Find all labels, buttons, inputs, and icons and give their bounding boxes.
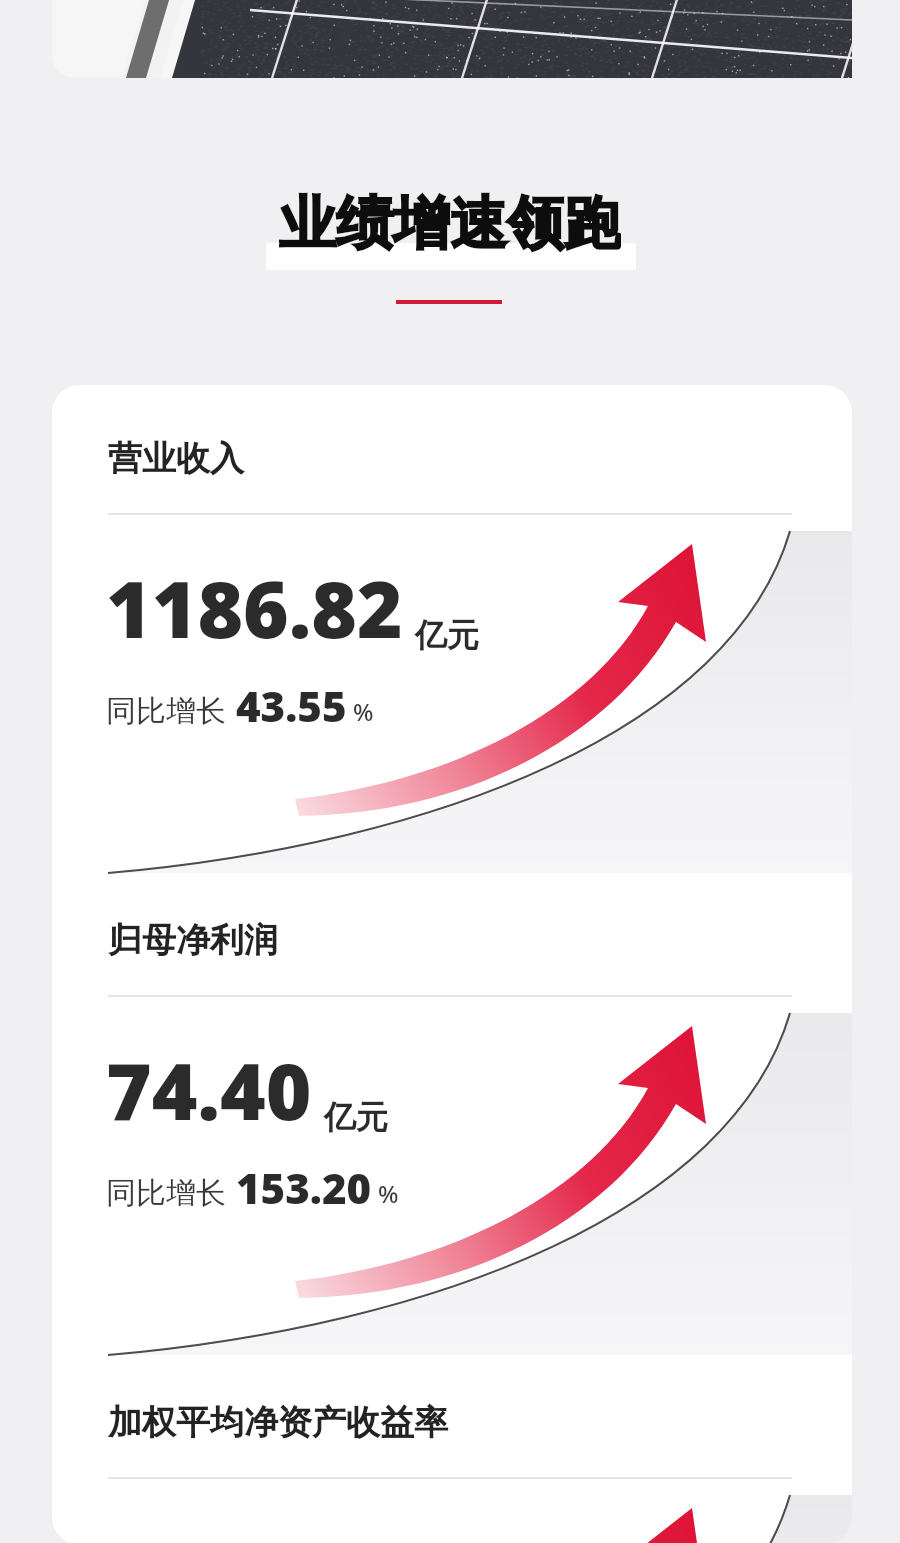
button[interactable]: 营业收入 [52, 385, 852, 1543]
staticText: 1186.82 [106, 555, 403, 661]
staticText: 153.20 [236, 1159, 372, 1216]
staticText: % [353, 695, 374, 728]
staticText: % [378, 1177, 399, 1210]
staticText: 业绩增速领跑 [279, 188, 621, 256]
staticText: 营业收入 [108, 437, 244, 480]
staticText: 同比增长 [106, 1174, 226, 1212]
staticText: 同比增长 [106, 692, 226, 730]
staticText: 加权平均净资产收益率 [108, 1401, 448, 1444]
staticText: 43.55 [236, 677, 347, 734]
staticText: 归母净利润 [108, 919, 278, 962]
staticText: 74.40 [106, 1037, 312, 1143]
staticText: 亿元 [324, 1097, 388, 1137]
staticText: 亿元 [415, 615, 479, 655]
